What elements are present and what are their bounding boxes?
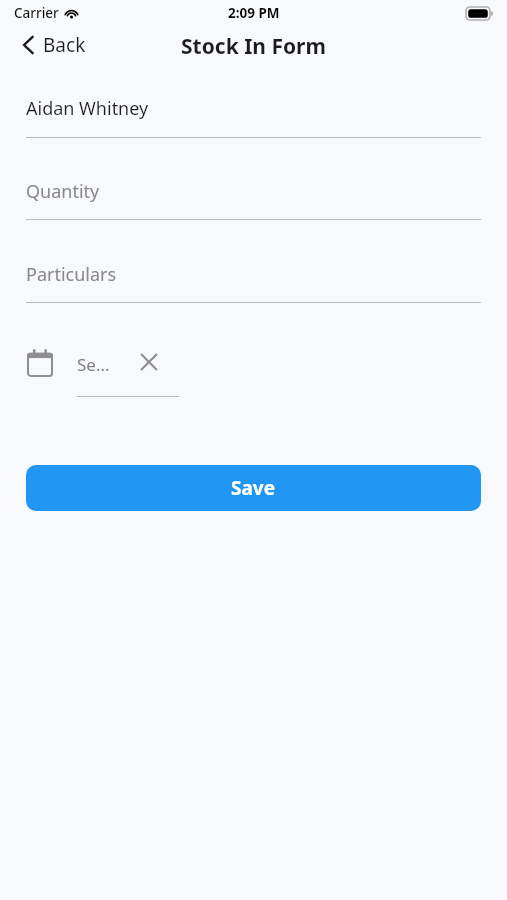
- staticText: Back: [43, 32, 86, 58]
- button[interactable]: Particulars: [26, 262, 481, 303]
- staticText: 2:09 PM: [228, 4, 280, 22]
- button[interactable]: Back: [18, 28, 90, 62]
- button[interactable]: Quantity: [26, 179, 481, 220]
- button[interactable]: Clear date: [138, 351, 160, 373]
- staticText: Se…: [77, 353, 110, 376]
- staticText: Particulars: [26, 262, 117, 287]
- staticText: Quantity: [26, 179, 100, 204]
- button[interactable]: Pick date: [27, 349, 53, 377]
- button[interactable]: Aidan Whitney: [26, 96, 481, 138]
- staticText: Aidan Whitney: [26, 96, 149, 121]
- button[interactable]: Save: [26, 465, 481, 511]
- staticText: Save: [231, 475, 276, 501]
- button[interactable]: Se…: [77, 344, 179, 400]
- staticText: Stock In Form: [0, 32, 507, 61]
- staticText: Carrier: [14, 4, 59, 22]
